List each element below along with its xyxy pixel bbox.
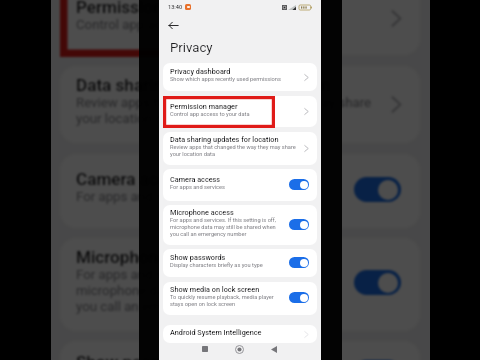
button[interactable]: Privacy dashboard — [163, 63, 317, 91]
button[interactable]: Toggle — [289, 292, 309, 303]
staticText: Data sharing updates for location — [170, 135, 279, 144]
staticText: Review apps that changed the way they ma… — [170, 144, 296, 151]
button[interactable]: Data sharing updates for location — [60, 66, 420, 143]
staticText: Privacy dashboard — [170, 67, 231, 76]
staticText: Privacy — [170, 40, 213, 55]
staticText: you call an emergency number — [76, 299, 256, 315]
button[interactable]: Data sharing updates for location — [163, 132, 317, 165]
button[interactable]: Toggle — [289, 257, 309, 268]
staticText: Review apps that changed the way they ma… — [76, 95, 372, 111]
button[interactable]: Microphone access — [60, 238, 420, 331]
button[interactable]: Toggle — [354, 270, 401, 295]
staticText: Permission manager — [170, 102, 238, 111]
button[interactable]: Microphone access — [163, 205, 317, 245]
staticText: Show passwords — [76, 352, 206, 360]
staticText: your location data — [170, 151, 215, 158]
staticText: microphone data may still be shared when — [170, 224, 276, 231]
button[interactable]: Back — [270, 345, 278, 353]
staticText: Data sharing updates for location — [76, 75, 331, 95]
staticText: Display characters briefly as you type — [170, 262, 263, 269]
staticText: For apps and services — [76, 189, 205, 205]
staticText: Camera access — [170, 175, 221, 184]
staticText: Camera access — [76, 169, 194, 189]
button[interactable]: Toggle — [289, 179, 309, 190]
button[interactable]: Permission manager — [60, 0, 420, 55]
button[interactable]: Show media on lock screen — [163, 282, 317, 315]
staticText: your location data — [76, 111, 182, 127]
button[interactable]: Show passwords — [60, 341, 420, 360]
button[interactable]: Permission manager — [163, 96, 317, 127]
staticText: stays open on lock screen — [170, 301, 236, 308]
button[interactable]: Android System Intelligence — [163, 325, 317, 343]
staticText: you call an emergency number — [170, 231, 247, 238]
staticText: microphone data may still be shared when — [76, 283, 325, 299]
staticText: Show passwords — [170, 253, 226, 262]
button[interactable]: Back — [167, 19, 180, 32]
button[interactable]: Camera access — [163, 169, 317, 201]
staticText: Android System Intelligence — [170, 328, 262, 337]
staticText: Show which apps recently used permission… — [170, 76, 281, 83]
button[interactable]: Home — [235, 345, 244, 354]
button[interactable]: Toggle — [354, 177, 401, 202]
staticText: Control app access to your data — [76, 17, 263, 33]
staticText: Microphone access — [170, 208, 234, 217]
staticText: For apps and services. If this setting i… — [76, 267, 325, 283]
staticText: 13:40 — [168, 4, 183, 11]
staticText: Show media on lock screen — [170, 285, 260, 294]
button[interactable]: Toggle — [289, 219, 309, 230]
staticText: Permission manager — [76, 0, 235, 17]
staticText: Control app access to your data — [170, 111, 250, 118]
staticText: Microphone access — [76, 247, 226, 267]
staticText: To quickly resume playback, media player — [170, 294, 274, 301]
button[interactable]: Show passwords — [163, 249, 317, 277]
staticText: For apps and services. If this setting i… — [170, 217, 276, 224]
staticText: For apps and services — [170, 184, 225, 191]
button[interactable]: Recent apps — [201, 345, 209, 353]
button[interactable]: Camera access — [60, 154, 420, 228]
